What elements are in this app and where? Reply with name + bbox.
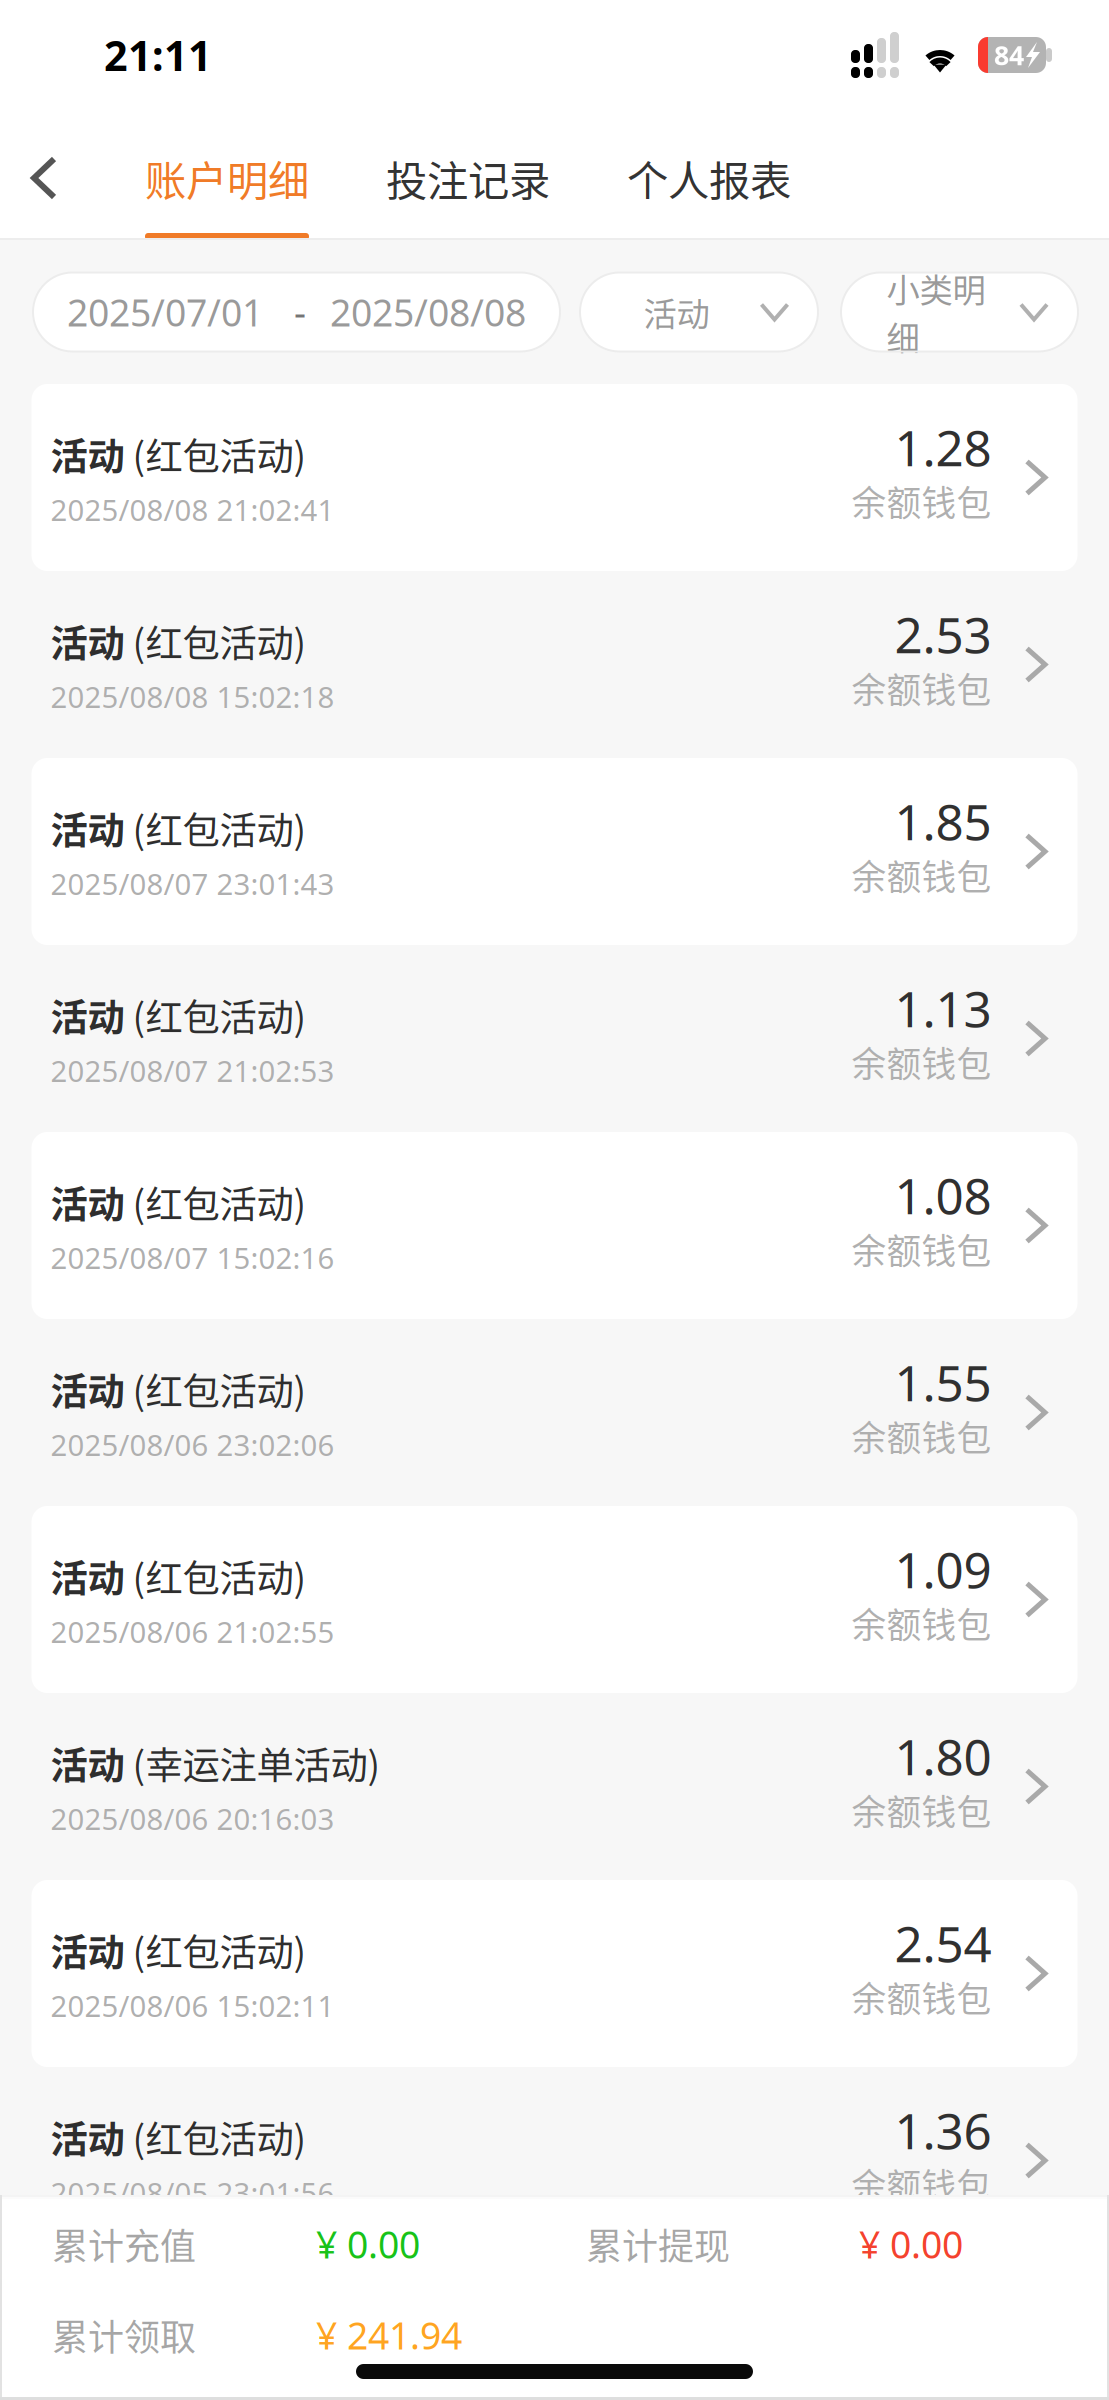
staticText: 余额钱包	[851, 1037, 991, 1087]
staticText: (红包活动)	[132, 1549, 306, 1603]
staticText: (红包活动)	[132, 1923, 306, 1977]
staticText: 2025/08/06 21:02:55	[50, 1611, 334, 1651]
staticText: 2025/08/08	[330, 287, 526, 337]
staticText: 个人报表	[627, 148, 791, 208]
staticText: 活动	[50, 614, 124, 668]
staticText: 余额钱包	[851, 2159, 991, 2209]
staticText: 余额钱包	[851, 850, 991, 900]
staticText: 累计领取	[52, 2309, 196, 2361]
staticText: 活动	[50, 427, 124, 481]
staticText: ¥ 0.00	[859, 2219, 963, 2269]
staticText: 1.09	[894, 1535, 991, 1603]
staticText: 小类明细	[886, 264, 985, 360]
staticText: 1.13	[894, 974, 991, 1042]
button[interactable]: 活动	[31, 1319, 1077, 1506]
staticText: 余额钱包	[851, 1411, 991, 1461]
staticText: 1.36	[894, 2096, 991, 2164]
staticText: 1.55	[894, 1348, 991, 1416]
staticText: 2025/08/06 15:02:11	[50, 1985, 334, 2025]
staticText: 活动	[50, 1549, 124, 1603]
staticText: 账户明细	[145, 148, 309, 208]
staticText: 余额钱包	[851, 476, 991, 526]
staticText: 活动	[50, 988, 124, 1042]
button[interactable]: 活动	[31, 758, 1077, 945]
button[interactable]: 账户明细	[139, 130, 315, 226]
button[interactable]: 活动	[31, 384, 1077, 571]
staticText: ¥ 0.00	[316, 2219, 420, 2269]
button[interactable]: 活动	[31, 1132, 1077, 1319]
staticText: 2025/08/08 15:02:18	[50, 676, 334, 716]
staticText: 1.85	[894, 787, 991, 855]
staticText: (红包活动)	[132, 801, 306, 855]
staticText: (红包活动)	[132, 2110, 306, 2164]
staticText: 余额钱包	[851, 663, 991, 713]
staticText: (红包活动)	[132, 988, 306, 1042]
staticText: 活动	[50, 1362, 124, 1416]
staticText: 2025/08/06 20:16:03	[50, 1798, 334, 1838]
staticText: 余额钱包	[851, 1224, 991, 1274]
button[interactable]: 小类明细	[841, 272, 1078, 351]
staticText: 2.54	[894, 1909, 991, 1977]
staticText: 2025/08/07 15:02:16	[50, 1237, 334, 1277]
button[interactable]: 活动	[31, 2067, 1077, 2254]
button[interactable]: 2025/07/01	[33, 272, 560, 351]
staticText: 余额钱包	[851, 1785, 991, 1835]
button[interactable]: 个人报表	[621, 130, 797, 226]
staticText: 活动	[50, 1923, 124, 1977]
staticText: 活动	[50, 801, 124, 855]
staticText: 2025/08/08 21:02:41	[50, 489, 334, 529]
staticText: 1.28	[894, 413, 991, 481]
staticText: 1.08	[894, 1161, 991, 1229]
staticText: 累计提现	[586, 2218, 730, 2270]
staticText: (红包活动)	[132, 427, 306, 481]
staticText: 余额钱包	[851, 1972, 991, 2022]
button[interactable]: 活动	[31, 945, 1077, 1132]
staticText: (红包活动)	[132, 1362, 306, 1416]
staticText: ¥ 241.94	[316, 2310, 462, 2360]
staticText: 2025/08/06 23:02:06	[50, 1424, 334, 1464]
staticText: (红包活动)	[132, 614, 306, 668]
staticText: 累计充值	[52, 2218, 196, 2270]
staticText: 2025/08/05 23:01:56	[50, 2172, 334, 2212]
staticText: 2025/08/07 23:01:43	[50, 863, 334, 903]
staticText: 1.80	[894, 1722, 991, 1790]
staticText: 2025/07/01	[67, 287, 263, 337]
staticText: 投注记录	[386, 148, 550, 208]
button[interactable]: 活动	[31, 1693, 1077, 1880]
staticText: 84	[994, 37, 1024, 73]
staticText: (红包活动)	[132, 1175, 306, 1229]
staticText: 活动	[643, 288, 709, 336]
staticText: 活动	[50, 1175, 124, 1229]
button[interactable]: 活动	[31, 571, 1077, 758]
button[interactable]: 活动	[31, 1506, 1077, 1693]
button[interactable]: 活动	[31, 1880, 1077, 2067]
staticText: 余额钱包	[851, 1598, 991, 1648]
button[interactable]: Back	[18, 130, 70, 226]
staticText: 2025/08/07 21:02:53	[50, 1050, 334, 1090]
staticText: 活动	[50, 2110, 124, 2164]
staticText: 活动	[50, 1736, 124, 1790]
staticText: -	[294, 287, 306, 337]
staticText: 2.53	[894, 600, 991, 668]
staticText: 21:11	[104, 27, 212, 83]
button[interactable]: 投注记录	[380, 130, 556, 226]
button[interactable]: 活动	[580, 272, 818, 351]
staticText: (幸运注单活动)	[132, 1736, 380, 1790]
